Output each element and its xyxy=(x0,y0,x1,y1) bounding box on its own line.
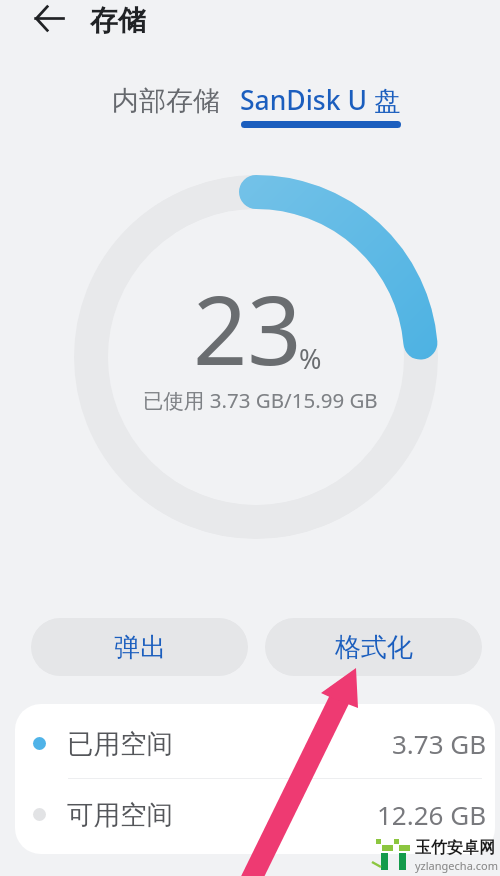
staticText: 23 xyxy=(193,263,302,392)
button[interactable]: Back xyxy=(29,0,69,40)
staticText: 12.26 GB xyxy=(377,797,487,832)
staticText: 3.73 GB xyxy=(392,726,487,761)
staticText: yzlangecha.com xyxy=(415,858,498,873)
staticText: 存储 xyxy=(90,3,146,38)
button[interactable]: 可用空间 xyxy=(15,777,495,851)
staticText: 已用空间 xyxy=(67,727,173,760)
button[interactable]: 内部存储 xyxy=(104,76,228,126)
staticText: 可用空间 xyxy=(67,798,173,831)
staticText: SanDisk U 盘 xyxy=(240,82,401,118)
button[interactable]: 格式化 xyxy=(265,618,482,676)
button[interactable]: 弹出 xyxy=(31,618,248,676)
staticText: 内部存储 xyxy=(112,84,220,118)
button[interactable]: SanDisk U 盘 xyxy=(232,74,409,126)
staticText: 格式化 xyxy=(335,631,413,664)
staticText: 玉竹安卓网 xyxy=(415,838,495,858)
staticText: % xyxy=(299,340,322,377)
staticText: 已使用 3.73 GB/15.99 GB xyxy=(143,386,378,414)
button[interactable]: 已用空间 xyxy=(15,706,495,780)
staticText: 弹出 xyxy=(114,631,166,664)
